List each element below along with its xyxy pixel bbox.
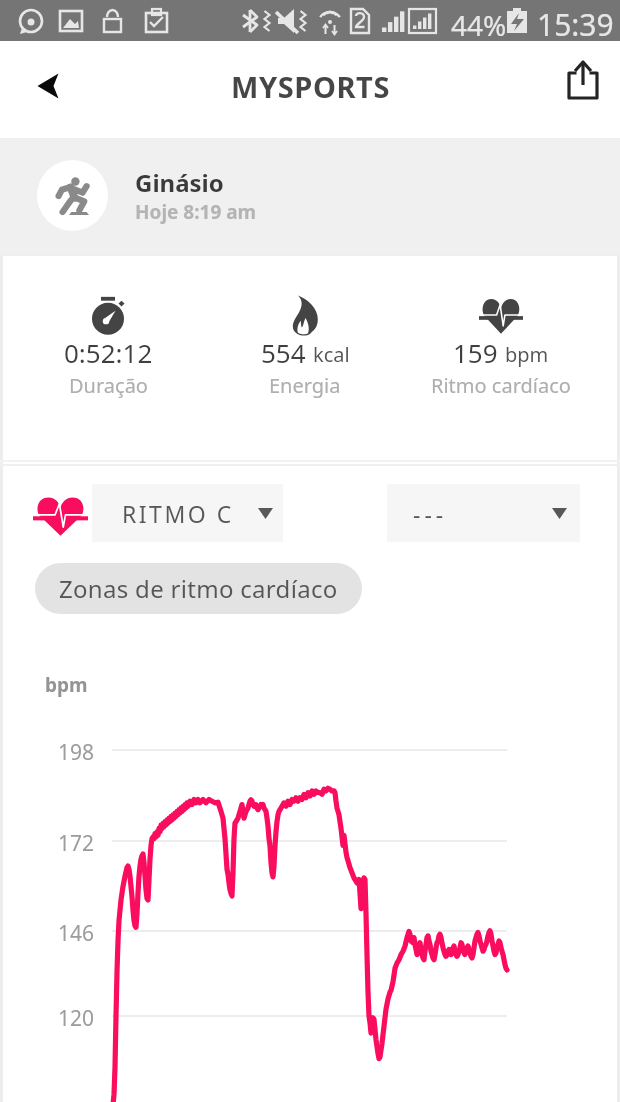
button[interactable]: 554	[205, 294, 405, 399]
staticText: 172	[58, 829, 95, 858]
staticText: Ginásio	[135, 166, 224, 199]
button[interactable]: 0:52:12	[8, 294, 208, 399]
button[interactable]: Back	[22, 60, 74, 112]
staticText: Energia	[269, 372, 341, 399]
staticText: kcal	[313, 341, 350, 368]
staticText: 0:52:12	[64, 335, 153, 370]
staticText: 198	[58, 738, 95, 767]
staticText: 120	[58, 1004, 95, 1033]
button[interactable]: Share	[556, 59, 610, 113]
staticText: 554	[261, 335, 306, 370]
staticText: bpm	[505, 341, 549, 368]
staticText: Zonas de ritmo cardíaco	[59, 572, 338, 605]
button[interactable]: ---	[387, 484, 580, 542]
staticText: 15:39	[537, 4, 614, 45]
staticText: MYSPORTS	[231, 67, 390, 106]
staticText: RITMO C	[122, 498, 234, 529]
button[interactable]: RITMO C	[92, 484, 283, 542]
staticText: Duração	[69, 372, 148, 399]
button[interactable]: Zonas de ritmo cardíaco	[35, 563, 362, 614]
staticText: Hoje 8:19 am	[135, 199, 257, 225]
staticText: 44%	[451, 6, 507, 44]
staticText: bpm	[45, 672, 88, 698]
button[interactable]: Ginásio	[0, 138, 620, 253]
staticText: ---	[413, 498, 448, 529]
staticText: 159	[453, 335, 498, 370]
staticText: Ritmo cardíaco	[431, 372, 571, 399]
button[interactable]: 159	[401, 294, 601, 399]
staticText: 146	[58, 919, 95, 948]
